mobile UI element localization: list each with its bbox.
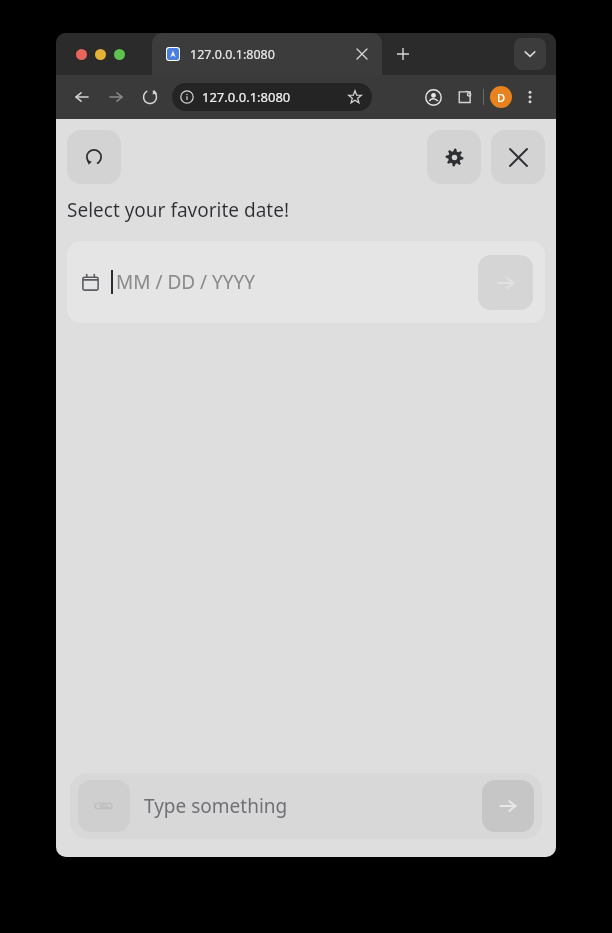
staticText: MM / DD / YYYY	[116, 269, 256, 295]
button[interactable]: Window control	[114, 49, 125, 60]
button[interactable]: Send	[482, 780, 534, 832]
button[interactable]: Window control	[95, 49, 106, 60]
staticText: D	[497, 90, 506, 105]
button[interactable]: New tab	[390, 41, 416, 67]
button[interactable]: 127.0.0.1:8080	[152, 33, 382, 75]
button[interactable]: Bookmark	[346, 88, 364, 106]
button[interactable]: More options	[516, 83, 544, 111]
button[interactable]: Reset	[67, 130, 121, 184]
staticText: Select your favorite date!	[67, 197, 290, 223]
button[interactable]: Tab search	[514, 38, 546, 70]
staticText: 127.0.0.1:8080	[190, 46, 275, 63]
button[interactable]: Account	[490, 86, 512, 108]
button[interactable]: Close	[491, 130, 545, 184]
button[interactable]: Close tab	[352, 44, 372, 64]
button[interactable]: 127.0.0.1:8080	[172, 83, 372, 111]
button[interactable]: Window control	[76, 49, 87, 60]
button[interactable]: Extensions	[451, 83, 479, 111]
staticText: 127.0.0.1:8080	[202, 88, 291, 106]
button[interactable]: Forward	[102, 83, 130, 111]
button[interactable]: Attach file	[78, 780, 130, 832]
button[interactable]: Reload	[136, 83, 164, 111]
button[interactable]: Submit date	[478, 255, 533, 310]
button[interactable]: MM / DD / YYYY	[67, 241, 545, 323]
button[interactable]: Profile	[419, 83, 447, 111]
button[interactable]: Settings	[427, 130, 481, 184]
staticText: Type something	[144, 793, 288, 819]
button[interactable]: Back	[68, 83, 96, 111]
